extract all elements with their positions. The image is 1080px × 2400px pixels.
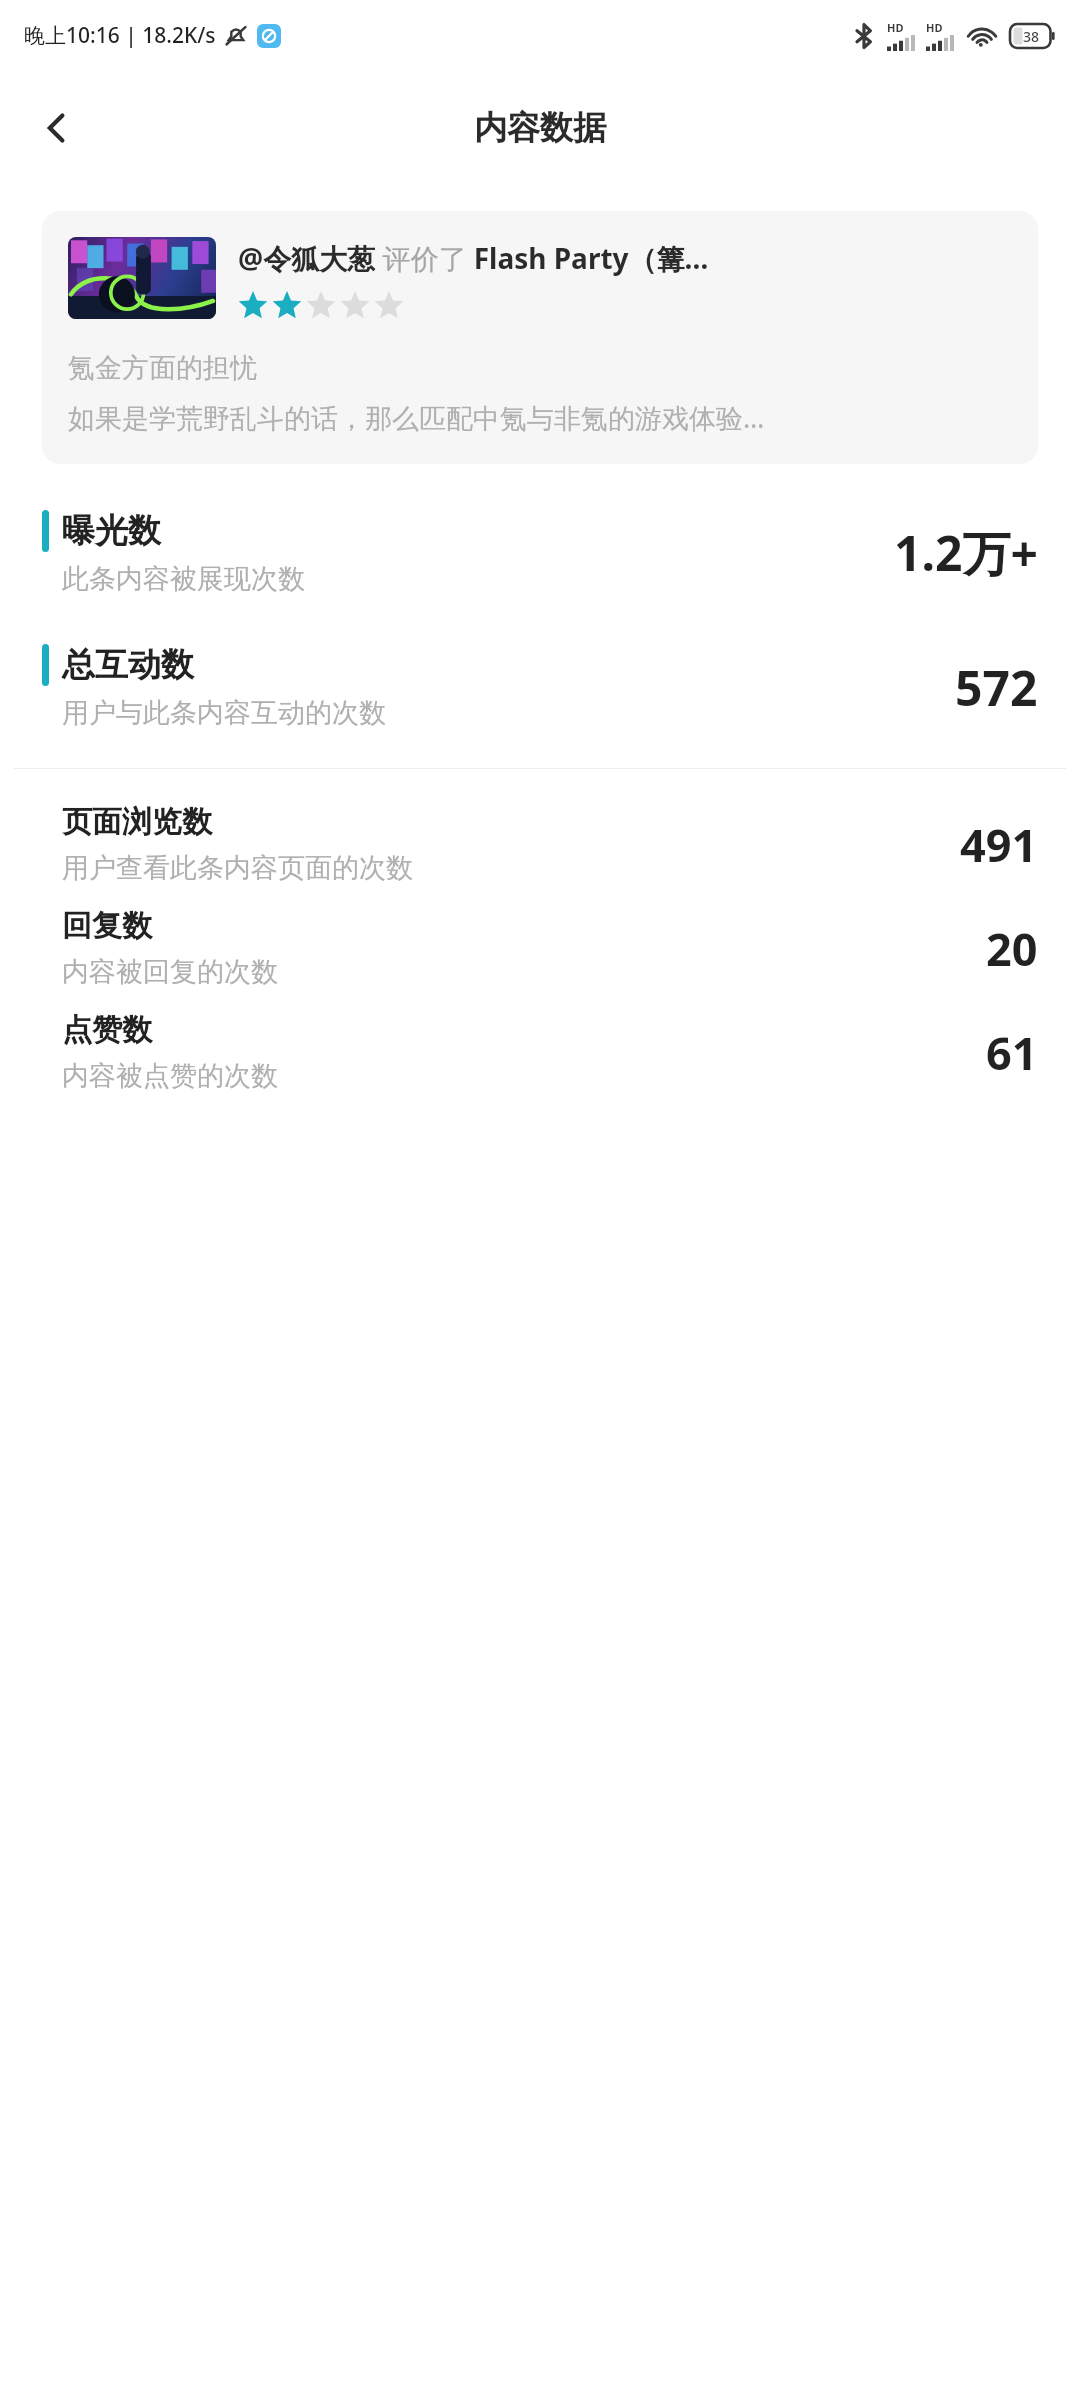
button[interactable]: @令狐大葱 评价了 Flash Party（篝… <box>42 211 1038 464</box>
button[interactable]: 页面浏览数 <box>0 803 1080 885</box>
button[interactable]: 点赞数 <box>0 1011 1080 1093</box>
staticText: 点赞数 <box>62 1011 152 1049</box>
staticText: 回复数 <box>62 907 152 945</box>
staticText: 38 <box>1023 27 1040 46</box>
staticText: 1.2万+ <box>894 520 1038 586</box>
staticText: 内容被点赞的次数 <box>62 1059 278 1093</box>
staticText: 如果是学荒野乱斗的话，那么匹配中氪与非氪的游戏体验… <box>68 399 765 436</box>
staticText: @令狐大葱 评价了 Flash Party（篝… <box>238 239 709 277</box>
staticText: 此条内容被展现次数 <box>62 562 305 596</box>
button[interactable]: 回复数 <box>0 907 1080 989</box>
staticText: 晚上10:16 | 18.2K/s <box>24 21 216 50</box>
staticText: 用户查看此条内容页面的次数 <box>62 851 413 885</box>
button[interactable]: 返回 <box>26 97 88 159</box>
staticText: 曝光数 <box>62 510 161 552</box>
staticText: 内容数据 <box>474 107 606 149</box>
staticText: 491 <box>960 814 1038 875</box>
button[interactable]: 曝光数 <box>0 510 1080 596</box>
staticText: 内容被回复的次数 <box>62 955 278 989</box>
staticText: HD <box>887 20 904 35</box>
staticText: 页面浏览数 <box>62 803 212 841</box>
button[interactable]: 总互动数 <box>0 644 1080 730</box>
staticText: 氪金方面的担忧 <box>68 351 257 385</box>
staticText: 20 <box>986 918 1038 979</box>
staticText: 572 <box>955 655 1038 720</box>
staticText: 用户与此条内容互动的次数 <box>62 696 386 730</box>
staticText: HD <box>926 20 943 35</box>
staticText: 总互动数 <box>62 644 194 686</box>
staticText: 61 <box>986 1022 1038 1083</box>
